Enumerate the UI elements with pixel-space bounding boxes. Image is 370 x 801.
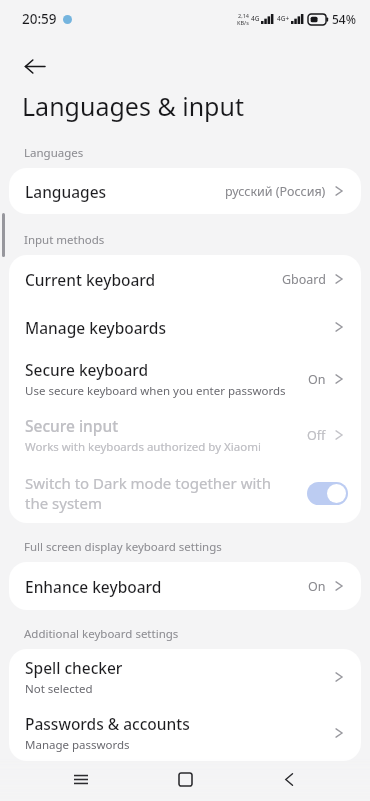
staticText: 20:59 [22,10,57,28]
staticText: Gboard [282,271,326,288]
button[interactable]: Manage keyboards [9,303,361,351]
staticText: 2,14 [238,12,249,19]
button[interactable]: Languages [9,168,361,214]
button[interactable]: Secure input [9,407,361,463]
staticText: Off [307,427,326,444]
staticText: 54% [332,11,356,27]
staticText: Use secure keyboard when you enter passw… [25,383,286,399]
staticText: Full screen display keyboard settings [24,539,370,555]
staticText: Enhance keyboard [25,576,162,597]
staticText: Input methods [24,232,370,248]
staticText: Secure input [25,415,119,436]
button[interactable]: Recents [58,757,104,801]
staticText: Secure keyboard [25,359,149,380]
button[interactable]: Secure keyboard [9,351,361,407]
staticText: On [308,371,326,388]
button[interactable]: Spell checker [9,649,361,705]
staticText: 4G+ [277,14,290,23]
button[interactable]: Enhance keyboard [9,562,361,610]
staticText: Manage keyboards [25,317,166,338]
staticText: KB/s [237,19,249,26]
staticText: On [308,578,326,595]
staticText: Additional keyboard settings [24,626,370,642]
button[interactable]: Switch to Dark mode together with the sy… [9,463,361,523]
staticText: русский (Россия) [225,183,326,200]
staticText: Spell checker [25,657,123,678]
button[interactable]: Passwords & accounts [9,705,361,761]
staticText: Current keyboard [25,269,156,290]
staticText: Languages & input [22,89,244,123]
button[interactable]: Home [162,757,208,801]
staticText: Languages [25,181,107,202]
button[interactable]: Current keyboard [9,255,361,303]
staticText: Works with keyboards authorized by Xiaom… [25,439,261,455]
button[interactable]: Back [12,44,56,88]
staticText: Passwords & accounts [25,713,190,734]
staticText: 4G [251,14,260,23]
staticText: Not selected [25,681,93,697]
button[interactable]: Back [266,757,312,801]
staticText: Switch to Dark mode together with the sy… [25,473,295,513]
staticText: Languages [24,145,370,161]
staticText: Manage passwords [25,737,130,753]
